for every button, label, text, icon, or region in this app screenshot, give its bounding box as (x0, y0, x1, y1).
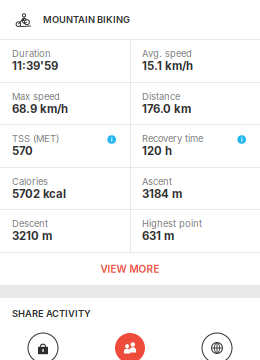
staticText: 5702 kcal (12, 187, 66, 201)
button[interactable]: Public (202, 333, 232, 360)
staticText: 68.9 km/h (12, 102, 68, 116)
staticText: 631 m (142, 229, 174, 243)
staticText: Highest point (142, 218, 202, 229)
staticText: VIEW MORE (100, 263, 159, 275)
staticText: Calories (12, 176, 48, 187)
staticText: MOUNTAIN BIKING (43, 14, 130, 25)
staticText: Max speed (12, 91, 60, 102)
staticText: Distance (142, 91, 180, 102)
staticText: Ascent (142, 176, 172, 187)
staticText: 176.0 km (142, 102, 191, 116)
staticText: Descent (12, 218, 48, 229)
staticText: Duration (12, 48, 51, 59)
staticText: SHARE ACTIVITY (12, 308, 91, 319)
staticText: 3184 m (142, 187, 182, 201)
staticText: 11:39'59 (12, 59, 58, 73)
staticText: Avg. speed (142, 48, 192, 59)
staticText: Recovery time (142, 133, 203, 144)
staticText: 15.1 km/h (142, 59, 193, 73)
button[interactable]: Private (28, 333, 58, 360)
staticText: 3210 m (12, 229, 52, 243)
staticText: 570 (12, 144, 33, 158)
button[interactable]: VIEW MORE (0, 253, 260, 285)
staticText: 120 h (142, 144, 172, 158)
staticText: TSS (MET) (12, 133, 59, 144)
button[interactable]: Followers (115, 333, 145, 360)
